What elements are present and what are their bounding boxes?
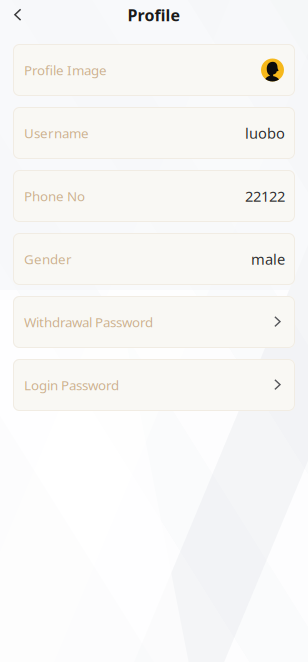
button[interactable]: Username [13,107,295,159]
staticText: Gender [24,250,72,268]
staticText: Profile Image [24,61,107,79]
button[interactable]: Profile Image [13,44,295,96]
staticText: male [251,249,285,269]
staticText: 22122 [245,186,285,206]
button[interactable]: Back [0,0,32,30]
staticText: Phone No [24,187,85,205]
staticText: Profile [127,4,180,26]
staticText: Login Password [24,376,119,394]
button[interactable]: Gender [13,233,295,285]
button[interactable]: Login Password [13,359,295,411]
staticText: Username [24,124,89,142]
button[interactable]: Withdrawal Password [13,296,295,348]
staticText: luobo [245,123,285,143]
button[interactable]: Phone No [13,170,295,222]
staticText: Withdrawal Password [24,313,153,331]
